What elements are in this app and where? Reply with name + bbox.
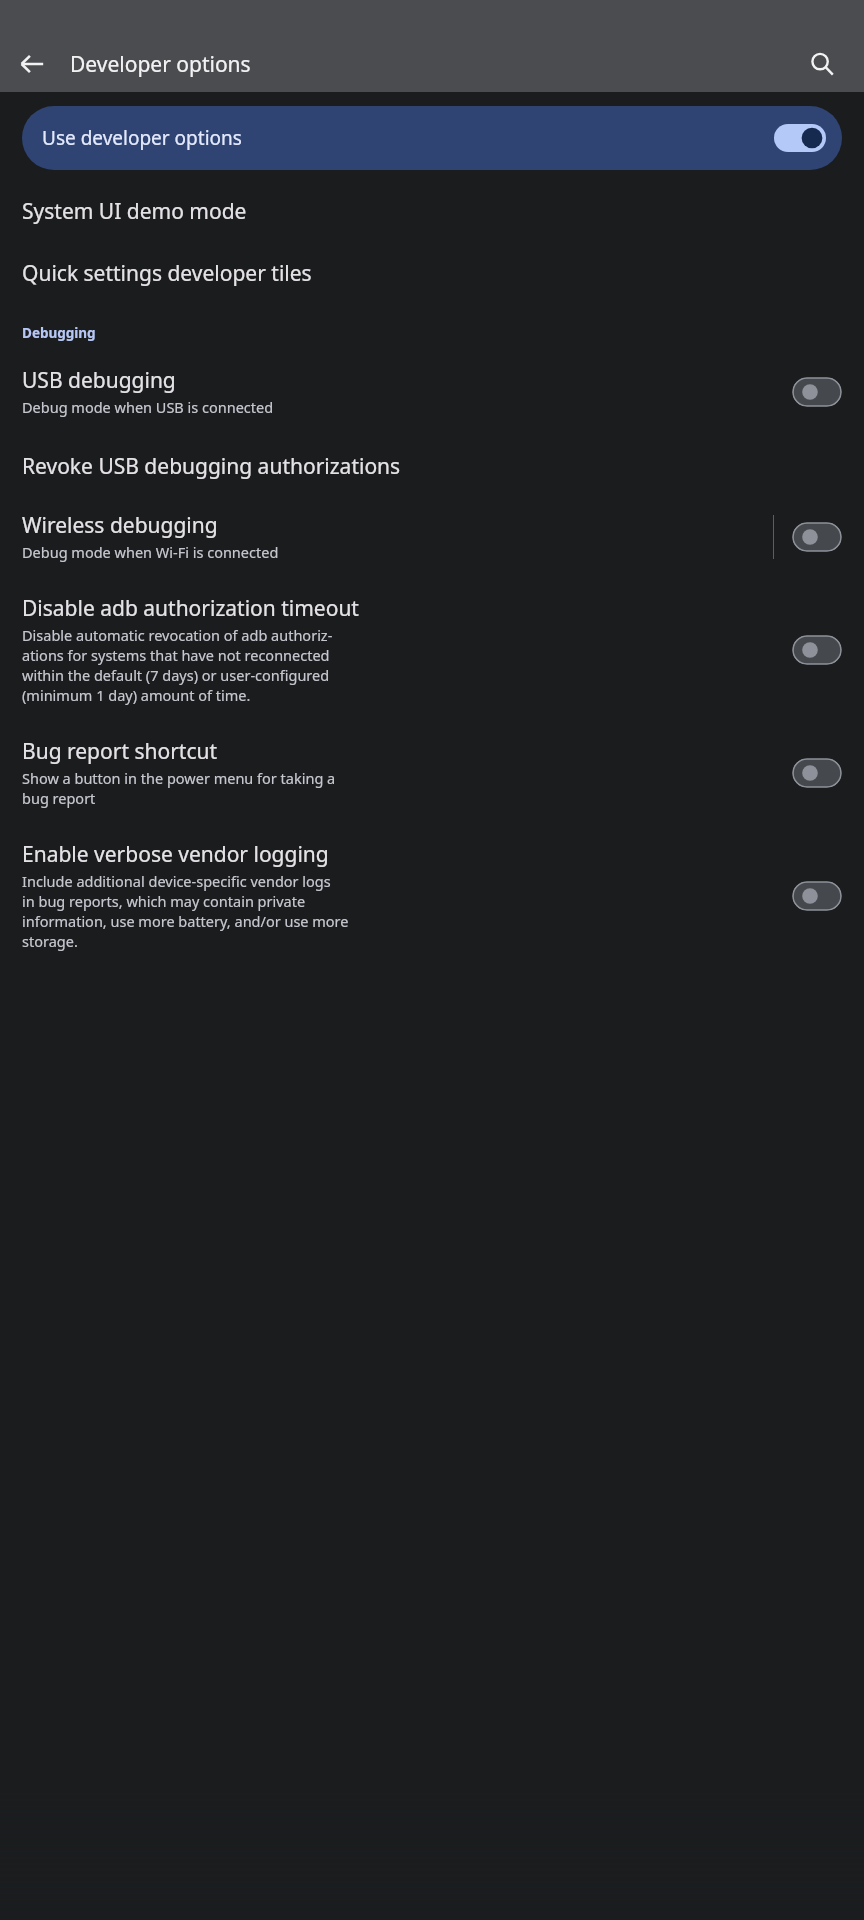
staticText: Disable automatic revocation of adb auth… bbox=[22, 625, 333, 705]
staticText: USB debugging bbox=[22, 366, 176, 395]
button[interactable]: Disable adb authorization timeout bbox=[792, 635, 842, 665]
button[interactable]: USB debugging bbox=[0, 352, 864, 435]
button[interactable]: Wireless debugging bbox=[0, 497, 864, 580]
staticText: Quick settings developer tiles bbox=[22, 259, 312, 288]
staticText: Use developer options bbox=[42, 125, 242, 151]
staticText: Bug report shortcut bbox=[22, 737, 218, 766]
staticText: Debug mode when Wi-Fi is connected bbox=[22, 542, 279, 562]
staticText: Developer options bbox=[70, 50, 251, 79]
button[interactable]: Wireless debugging bbox=[792, 522, 842, 552]
button[interactable]: Use developer options bbox=[22, 106, 842, 170]
button[interactable]: System UI demo mode bbox=[0, 180, 864, 242]
staticText: Enable verbose vendor logging bbox=[22, 840, 329, 869]
button[interactable]: Bug report shortcut bbox=[0, 723, 864, 826]
button[interactable]: Back bbox=[8, 40, 56, 88]
button[interactable]: Disable adb authorization timeout bbox=[0, 580, 864, 723]
staticText: Debugging bbox=[22, 324, 96, 342]
button[interactable]: Enable verbose vendor logging bbox=[792, 881, 842, 911]
button[interactable]: Revoke USB debugging authorizations bbox=[0, 435, 864, 497]
staticText: Show a button in the power menu for taki… bbox=[22, 768, 336, 808]
button[interactable]: Search bbox=[798, 40, 846, 88]
staticText: Revoke USB debugging authorizations bbox=[22, 452, 401, 481]
button[interactable]: Quick settings developer tiles bbox=[0, 242, 864, 304]
staticText: System UI demo mode bbox=[22, 197, 247, 226]
button[interactable]: Bug report shortcut bbox=[792, 758, 842, 788]
button[interactable]: USB debugging bbox=[792, 377, 842, 407]
staticText: Debug mode when USB is connected bbox=[22, 397, 274, 417]
staticText: Include additional device-specific vendo… bbox=[22, 871, 349, 951]
staticText: Wireless debugging bbox=[22, 511, 218, 540]
button[interactable]: Enable verbose vendor logging bbox=[0, 826, 864, 969]
staticText: Disable adb authorization timeout bbox=[22, 594, 359, 623]
